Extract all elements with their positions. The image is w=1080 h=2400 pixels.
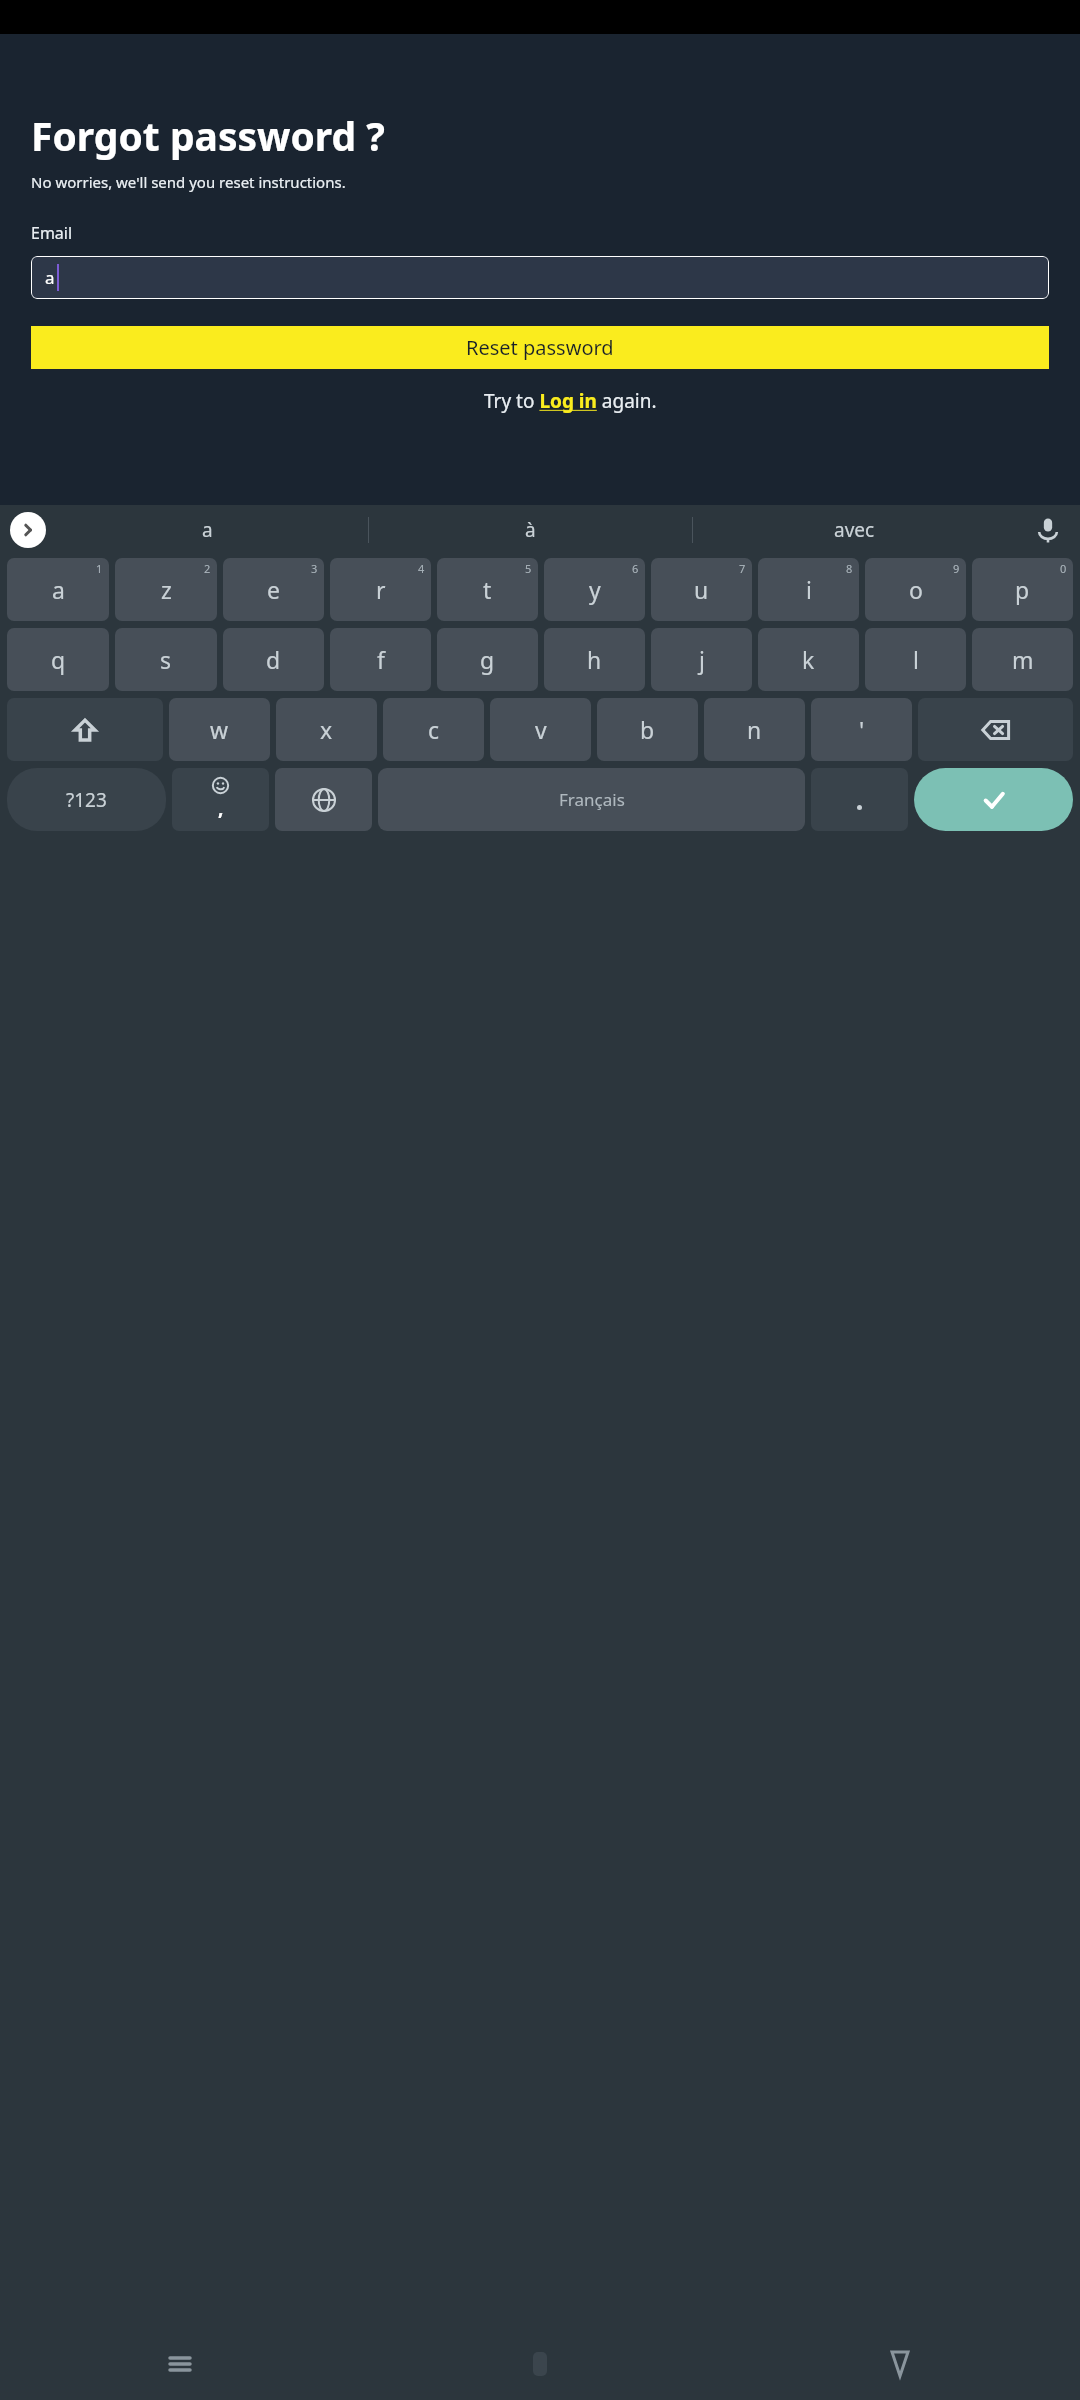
staticText: h [587,644,602,675]
button[interactable]: Try to Log in again. [484,388,657,414]
button[interactable]: l [865,628,966,691]
button[interactable]: k [758,628,859,691]
button[interactable]: Français [378,768,805,831]
staticText: ' [859,714,865,745]
button[interactable]: x [276,698,377,761]
button[interactable]: Reset password [31,326,1049,369]
button[interactable]: n [704,698,805,761]
staticText: v [535,714,547,745]
staticText: r [376,574,386,605]
staticText: e [267,574,280,605]
button[interactable]: ?123 [7,768,166,831]
button[interactable]: e [223,558,324,621]
staticText: 4 [418,561,425,576]
button[interactable]: d [223,628,324,691]
staticText: 0 [1060,561,1067,576]
button[interactable]: ' [811,698,912,761]
staticText: 5 [525,561,532,576]
staticText: w [210,714,229,745]
button[interactable]: b [597,698,698,761]
staticText: a [52,574,65,605]
button[interactable]: p [972,558,1073,621]
staticText: , [218,795,224,821]
button[interactable]: Emoji [172,768,269,831]
staticText: o [909,574,923,605]
staticText: i [806,574,812,605]
staticText: p [1015,574,1030,605]
staticText: avec [834,517,875,543]
button[interactable]: Expand suggestions [10,512,46,548]
button[interactable]: y [544,558,645,621]
button[interactable]: Enter [914,768,1073,831]
button[interactable]: m [972,628,1073,691]
staticText: n [747,714,762,745]
button[interactable]: u [651,558,752,621]
button[interactable]: a [46,505,368,554]
button[interactable]: Backspace [918,698,1073,761]
button[interactable]: s [115,628,217,691]
button[interactable]: f [330,628,431,691]
button[interactable]: t [437,558,538,621]
staticText: x [320,714,333,745]
staticText: 7 [739,561,746,576]
staticText: z [161,574,172,605]
staticText: 1 [96,561,103,576]
staticText: ?123 [66,787,107,813]
staticText: f [377,644,385,675]
staticText: m [1012,644,1034,675]
staticText: Try to Log in again. [484,388,657,414]
staticText: c [428,714,440,745]
staticText: Français [559,788,625,811]
button[interactable]: avec [693,505,1016,554]
staticText: j [699,644,705,675]
button[interactable]: Recent apps [0,2328,360,2400]
staticText: No worries, we'll send you reset instruc… [31,172,346,192]
button[interactable]: v [490,698,591,761]
staticText: k [802,644,815,675]
staticText: y [589,574,601,605]
staticText: a [202,517,213,543]
staticText: 9 [953,561,960,576]
staticText: Forgot password ? [31,109,385,162]
button[interactable]: c [383,698,484,761]
button[interactable]: à [369,505,692,554]
staticText: 8 [846,561,853,576]
staticText: u [694,574,709,605]
button[interactable]: a [7,558,109,621]
button[interactable]: o [865,558,966,621]
button[interactable]: i [758,558,859,621]
button[interactable]: a [31,256,1049,299]
staticText: 2 [204,561,211,576]
staticText: g [480,644,495,675]
staticText: 3 [311,561,318,576]
staticText: Reset password [466,334,614,361]
staticText: q [51,644,66,675]
staticText: s [160,644,172,675]
staticText: Email [31,222,73,244]
staticText: t [483,574,492,605]
staticText: b [640,714,655,745]
staticText: d [266,644,281,675]
button[interactable]: Voice input [1016,505,1080,554]
button[interactable]: w [169,698,270,761]
staticText: 6 [632,561,639,576]
button[interactable]: j [651,628,752,691]
button[interactable] [811,768,908,831]
button[interactable]: Back [720,2328,1080,2400]
button[interactable]: r [330,558,431,621]
button[interactable]: q [7,628,109,691]
button[interactable]: h [544,628,645,691]
button[interactable]: z [115,558,217,621]
staticText: l [913,644,919,675]
button[interactable]: g [437,628,538,691]
button[interactable]: Change language [275,768,372,831]
button[interactable]: Shift [7,698,163,761]
staticText: à [525,517,536,543]
staticText: a [45,266,55,289]
